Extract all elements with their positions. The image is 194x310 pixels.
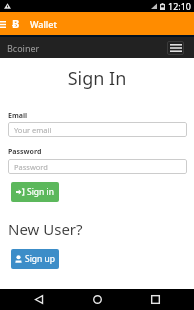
staticText: Email <box>8 111 28 121</box>
staticText: Your email <box>14 125 52 135</box>
staticText: Wallet <box>30 18 57 30</box>
button[interactable]: Recent apps <box>135 289 175 310</box>
button[interactable]: Password <box>8 159 187 174</box>
staticText: Password <box>8 147 42 157</box>
button[interactable]: Toggle navigation <box>167 41 184 55</box>
staticText: Sign in <box>27 186 54 198</box>
staticText: 12:10 <box>168 0 192 12</box>
button[interactable]: Sign in <box>11 182 59 202</box>
staticText: Sign In <box>0 66 194 91</box>
staticText: Sign up <box>25 253 56 265</box>
button[interactable]: Back <box>19 289 59 310</box>
button[interactable]: Home <box>77 289 117 310</box>
button[interactable]: Your email <box>8 122 187 137</box>
staticText: Ƀ <box>12 16 20 31</box>
button[interactable]: Open navigation drawer <box>0 14 10 34</box>
staticText: New User? <box>8 219 83 239</box>
button[interactable]: Sign up <box>11 249 59 269</box>
staticText: Password <box>14 162 48 172</box>
button[interactable]: Bcoiner <box>7 42 40 54</box>
